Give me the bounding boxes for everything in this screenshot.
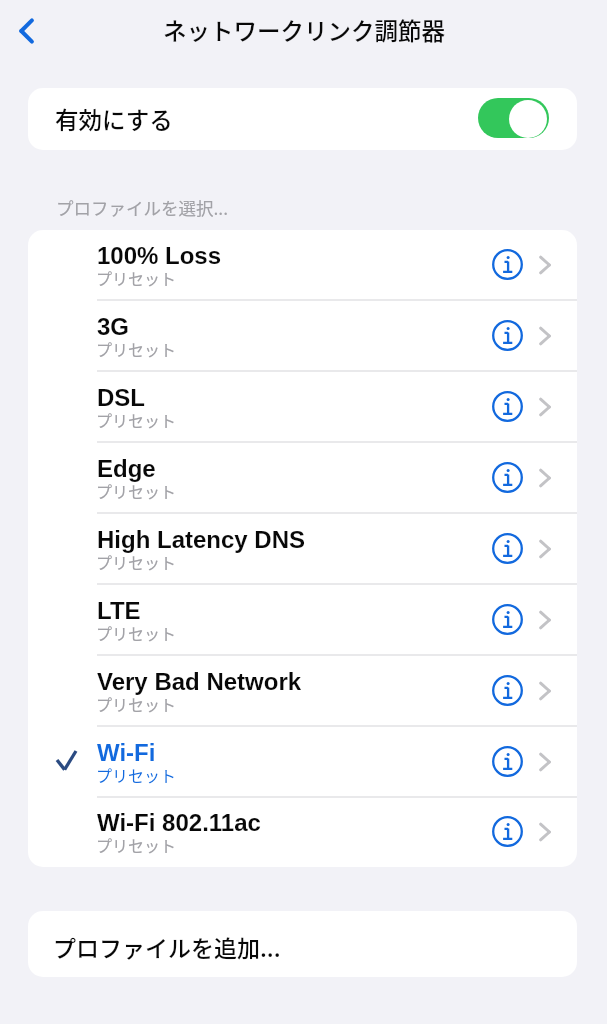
button[interactable]: Back [2, 7, 50, 55]
button[interactable]: More info [485, 244, 529, 288]
button[interactable]: Open High Latency DNS [530, 535, 560, 565]
staticText: プリセット [96, 337, 177, 360]
button[interactable]: 3G [28, 301, 577, 372]
button[interactable]: More info [485, 315, 529, 359]
button[interactable]: More info [485, 811, 529, 855]
button[interactable]: Open 3G [530, 322, 560, 352]
staticText: ネットワークリンク調節器 [163, 13, 445, 47]
staticText: High Latency DNS [97, 526, 306, 553]
button[interactable]: Open Very Bad Network [530, 677, 560, 707]
staticText: プリセット [96, 550, 177, 573]
button[interactable]: Open LTE [530, 606, 560, 636]
button[interactable]: 有効にする [28, 88, 577, 150]
staticText: Wi-Fi [97, 739, 156, 766]
button[interactable]: More info [485, 741, 529, 785]
staticText: DSL [97, 384, 145, 411]
button[interactable]: Open Wi-Fi 802.11ac [530, 818, 560, 848]
button[interactable]: Enable, on [478, 98, 549, 138]
staticText: プリセット [96, 621, 177, 644]
button[interactable]: DSL [28, 372, 577, 443]
staticText: LTE [97, 597, 141, 624]
staticText: プリセット [96, 692, 177, 715]
button[interactable]: Very Bad Network [28, 656, 577, 727]
button[interactable]: More info [485, 528, 529, 572]
button[interactable]: Wi-Fi [28, 727, 577, 798]
staticText: Very Bad Network [97, 668, 302, 695]
button[interactable]: More info [485, 457, 529, 501]
staticText: プリセット [96, 833, 177, 856]
button[interactable]: High Latency DNS [28, 514, 577, 585]
button[interactable]: More info [485, 386, 529, 430]
button[interactable]: Open 100% Loss [530, 251, 560, 281]
button[interactable]: Open Wi-Fi [530, 748, 560, 778]
button[interactable]: プロファイルを追加... [28, 911, 577, 977]
staticText: プロファイルを追加... [53, 930, 281, 963]
staticText: プリセット [96, 763, 177, 786]
button[interactable]: Wi-Fi 802.11ac [28, 798, 577, 867]
staticText: 有効にする [55, 102, 173, 136]
staticText: プロファイルを選択... [56, 195, 229, 220]
staticText: Edge [97, 455, 156, 482]
button[interactable]: Open Edge [530, 464, 560, 494]
button[interactable]: More info [485, 599, 529, 643]
staticText: プリセット [96, 266, 177, 289]
staticText: プリセット [96, 479, 177, 502]
button[interactable]: More info [485, 670, 529, 714]
button[interactable]: Edge [28, 443, 577, 514]
staticText: Wi-Fi 802.11ac [97, 809, 261, 836]
button[interactable]: LTE [28, 585, 577, 656]
staticText: 3G [97, 313, 130, 340]
staticText: プリセット [96, 408, 177, 431]
button[interactable]: Open DSL [530, 393, 560, 423]
button[interactable]: 100% Loss [28, 230, 577, 301]
staticText: 100% Loss [97, 242, 222, 269]
